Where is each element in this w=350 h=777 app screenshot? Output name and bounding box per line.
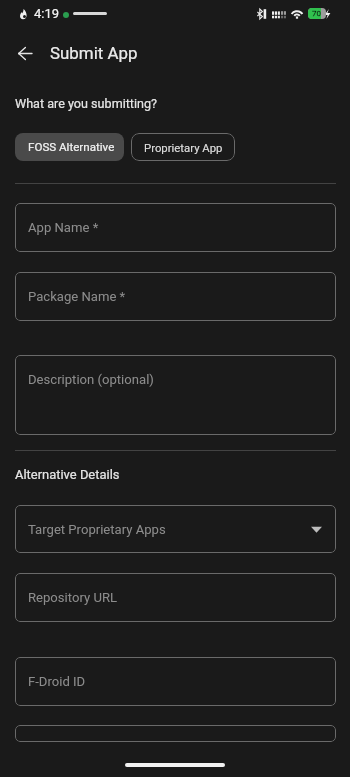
staticText: Package Name * bbox=[28, 289, 126, 304]
button[interactable]: Package Name * bbox=[15, 272, 336, 321]
staticText: F-Droid ID bbox=[28, 674, 86, 689]
staticText: What are you submitting? bbox=[15, 96, 158, 111]
button[interactable] bbox=[15, 725, 336, 742]
staticText: 70 bbox=[312, 9, 321, 18]
staticText: Repository URL bbox=[28, 590, 118, 605]
button[interactable]: Description (optional) bbox=[15, 355, 336, 435]
button[interactable]: Target Proprietary Apps bbox=[15, 505, 336, 553]
staticText: Alternative Details bbox=[15, 467, 120, 482]
button[interactable]: Repository URL bbox=[15, 573, 336, 622]
button[interactable]: Proprietary App bbox=[131, 133, 235, 161]
staticText: Description (optional) bbox=[28, 372, 154, 387]
staticText: FOSS Alternative bbox=[28, 140, 115, 154]
button[interactable]: FOSS Alternative bbox=[15, 133, 124, 161]
button[interactable]: F-Droid ID bbox=[15, 657, 336, 706]
staticText: 4:19 bbox=[34, 6, 60, 21]
staticText: Submit App bbox=[50, 43, 138, 63]
button[interactable]: Back bbox=[9, 37, 41, 69]
staticText: Proprietary App bbox=[144, 141, 223, 154]
button[interactable]: App Name * bbox=[15, 203, 336, 252]
staticText: Target Proprietary Apps bbox=[28, 522, 166, 537]
staticText: App Name * bbox=[28, 220, 99, 235]
